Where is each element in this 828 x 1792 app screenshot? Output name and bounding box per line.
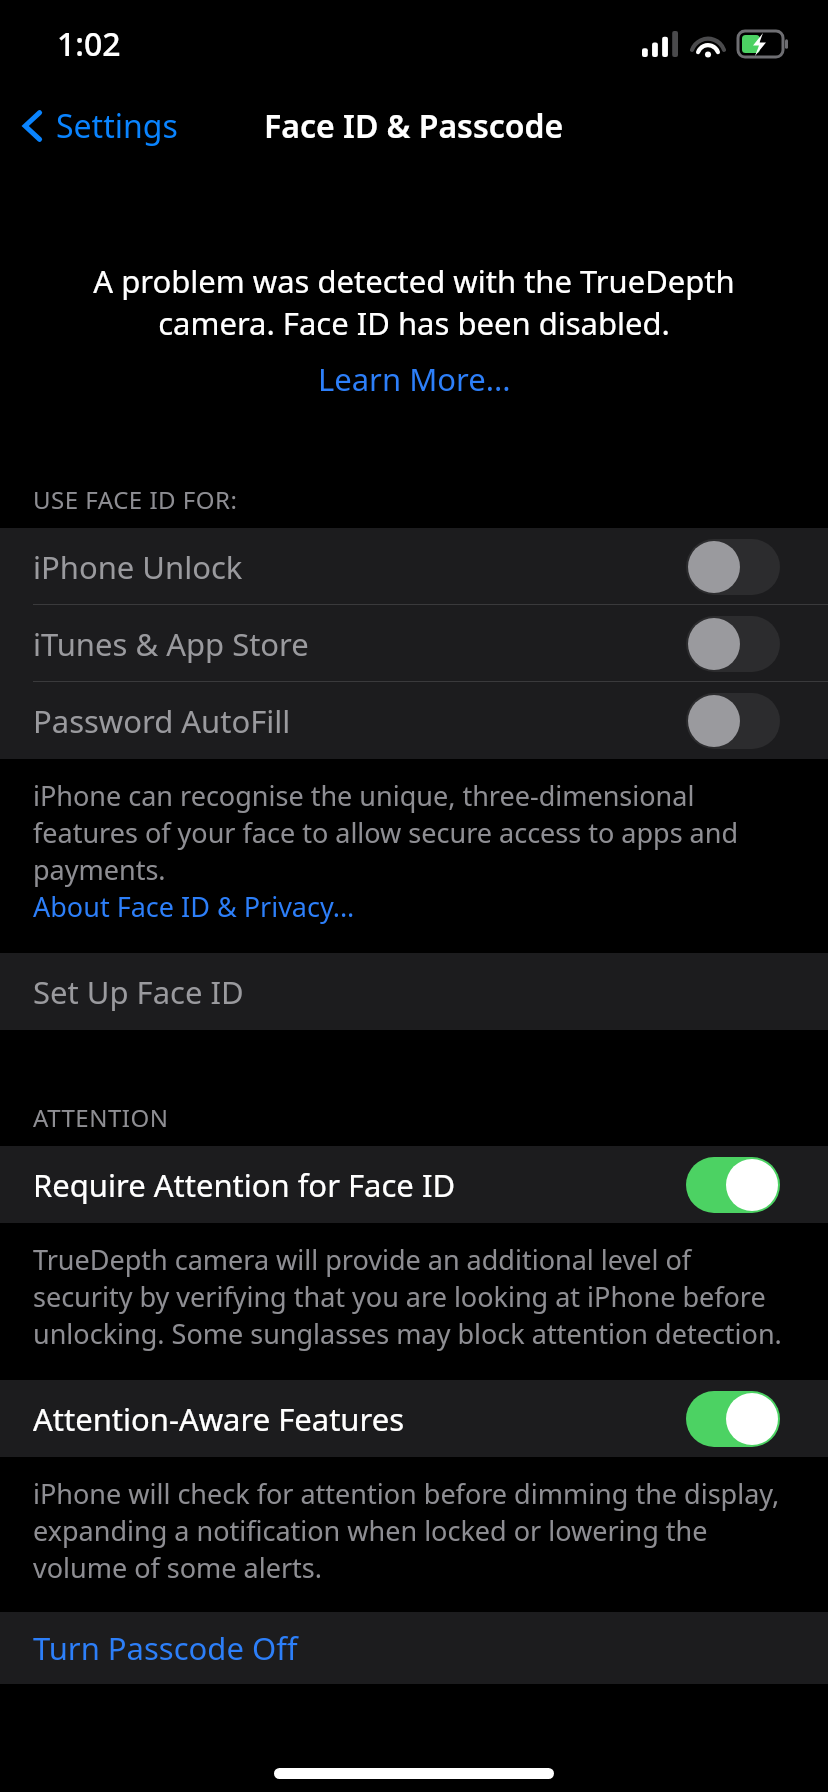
button[interactable]: Password AutoFill	[0, 682, 828, 759]
button[interactable]: Turn Passcode Off	[0, 1612, 828, 1684]
staticText: Face ID & Passcode	[264, 104, 564, 148]
staticText: Attention-Aware Features	[33, 1398, 405, 1440]
staticText: Settings	[56, 104, 178, 148]
staticText: ATTENTION	[33, 1101, 169, 1134]
button[interactable]: Require Attention for Face ID	[0, 1146, 828, 1223]
staticText: iPhone will check for attention before d…	[33, 1475, 788, 1586]
button[interactable]: Set Up Face ID	[0, 953, 828, 1030]
staticText: iTunes & App Store	[33, 623, 309, 665]
staticText: 1:02	[57, 22, 121, 66]
staticText: A problem was detected with the TrueDept…	[40, 260, 788, 344]
button[interactable]: Learn More...	[318, 358, 511, 400]
button[interactable]: iTunes & App Store	[0, 605, 828, 682]
staticText: Require Attention for Face ID	[33, 1164, 456, 1206]
button[interactable]: iPhone Unlock	[0, 528, 828, 605]
button[interactable]: Settings	[18, 104, 178, 148]
button[interactable]: Attention-Aware Features	[0, 1380, 828, 1457]
button[interactable]: About Face ID & Privacy...	[33, 888, 355, 925]
staticText: Set Up Face ID	[33, 971, 244, 1013]
staticText: USE FACE ID FOR:	[33, 483, 238, 516]
staticText: iPhone Unlock	[33, 546, 243, 588]
staticText: TrueDepth camera will provide an additio…	[33, 1241, 788, 1352]
staticText: Turn Passcode Off	[33, 1627, 298, 1669]
staticText: iPhone can recognise the unique, three-d…	[33, 777, 788, 888]
staticText: Password AutoFill	[33, 700, 291, 742]
